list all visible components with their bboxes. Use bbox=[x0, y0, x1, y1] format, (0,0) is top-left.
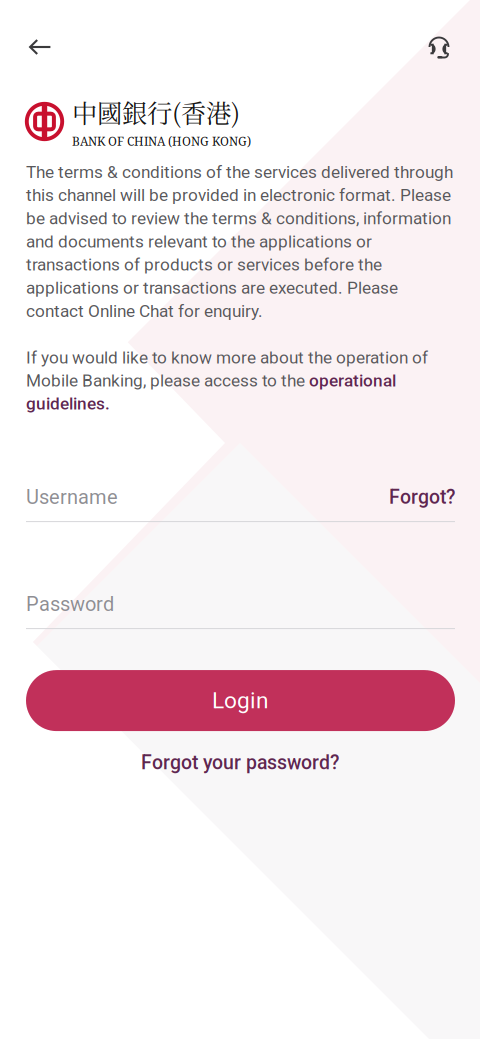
button[interactable]: Back bbox=[29, 25, 73, 69]
staticText: BANK OF CHINA (HONG KONG) bbox=[72, 133, 251, 149]
staticText: 中國銀行(香港) bbox=[72, 94, 240, 130]
staticText: Password bbox=[26, 592, 114, 616]
button[interactable]: Customer service bbox=[407, 25, 451, 69]
staticText: Mobile Banking, please access to the bbox=[26, 370, 309, 391]
staticText: Username bbox=[26, 485, 118, 509]
staticText: Forgot? bbox=[389, 486, 455, 508]
staticText: Login bbox=[212, 687, 269, 714]
button[interactable]: Login bbox=[26, 670, 455, 731]
button[interactable]: Forgot your password? bbox=[135, 745, 345, 780]
staticText: Forgot your password? bbox=[141, 751, 339, 774]
staticText: operational bbox=[309, 370, 396, 391]
staticText: The terms & conditions of the services d… bbox=[26, 162, 453, 321]
staticText: guidelines. bbox=[26, 393, 110, 414]
staticText: If you would like to know more about the… bbox=[26, 347, 428, 368]
button[interactable]: operational bbox=[309, 370, 396, 391]
button[interactable]: Forgot? bbox=[389, 486, 455, 508]
button[interactable]: guidelines. bbox=[26, 393, 110, 414]
